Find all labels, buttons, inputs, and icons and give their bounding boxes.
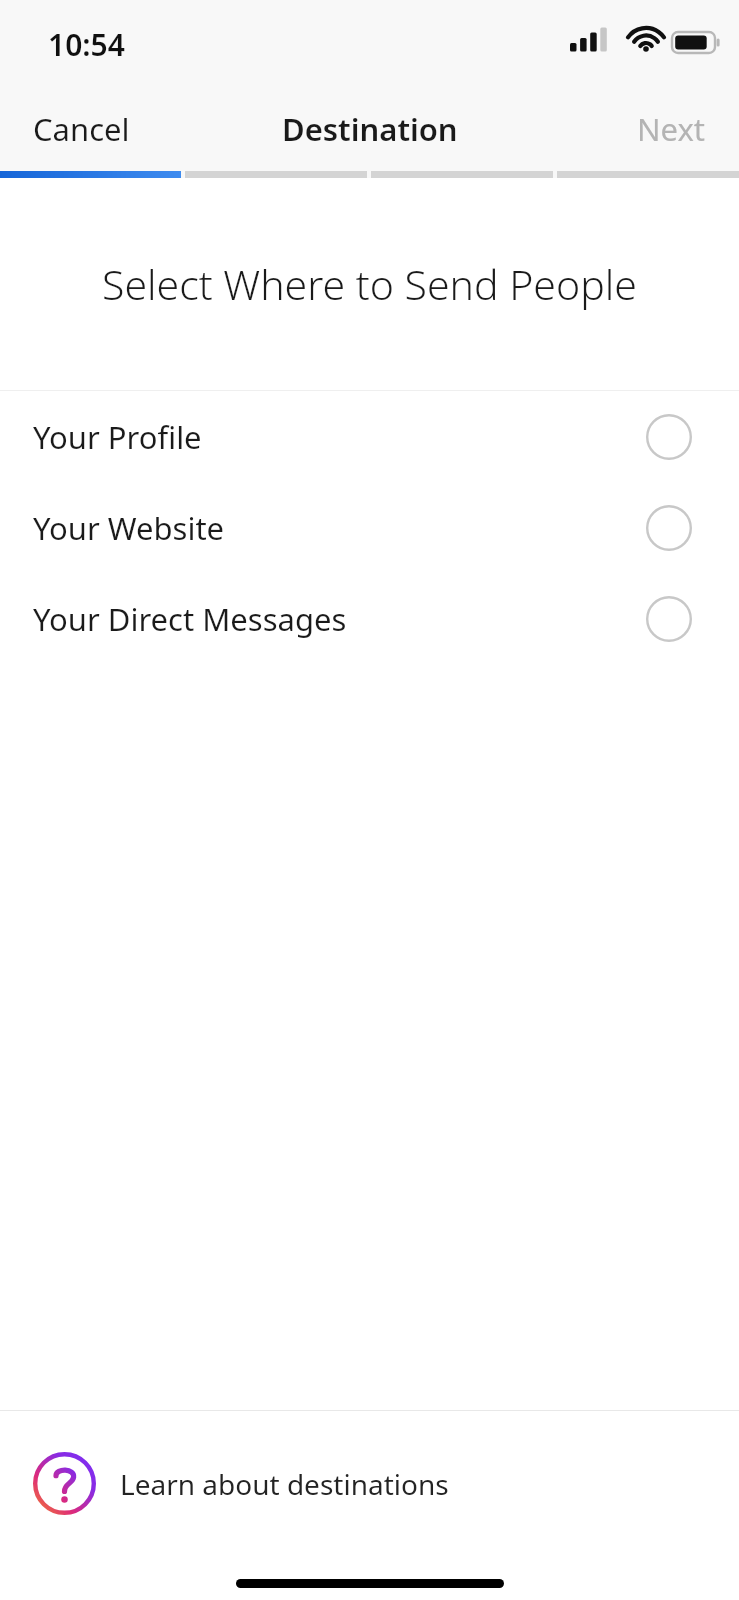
button[interactable]: Your Direct Messages	[0, 573, 739, 664]
other: Learn about destinations	[33, 1452, 96, 1515]
staticText: Select Where to Send People	[102, 256, 637, 312]
staticText: Destination	[282, 108, 458, 150]
button[interactable]: Cancel	[0, 92, 163, 166]
staticText: Your Website	[33, 507, 225, 549]
button[interactable]: Learn about destinations	[0, 1411, 739, 1556]
staticText: Your Direct Messages	[33, 598, 347, 640]
staticText: Your Profile	[33, 416, 202, 458]
staticText: Learn about destinations	[120, 1465, 449, 1503]
staticText: Next	[637, 108, 706, 150]
button[interactable]: Your Profile	[0, 391, 739, 482]
staticText: Cancel	[33, 108, 130, 150]
staticText: 10:54	[48, 24, 125, 65]
button[interactable]: Next	[604, 92, 739, 166]
button[interactable]: Your Website	[0, 482, 739, 573]
